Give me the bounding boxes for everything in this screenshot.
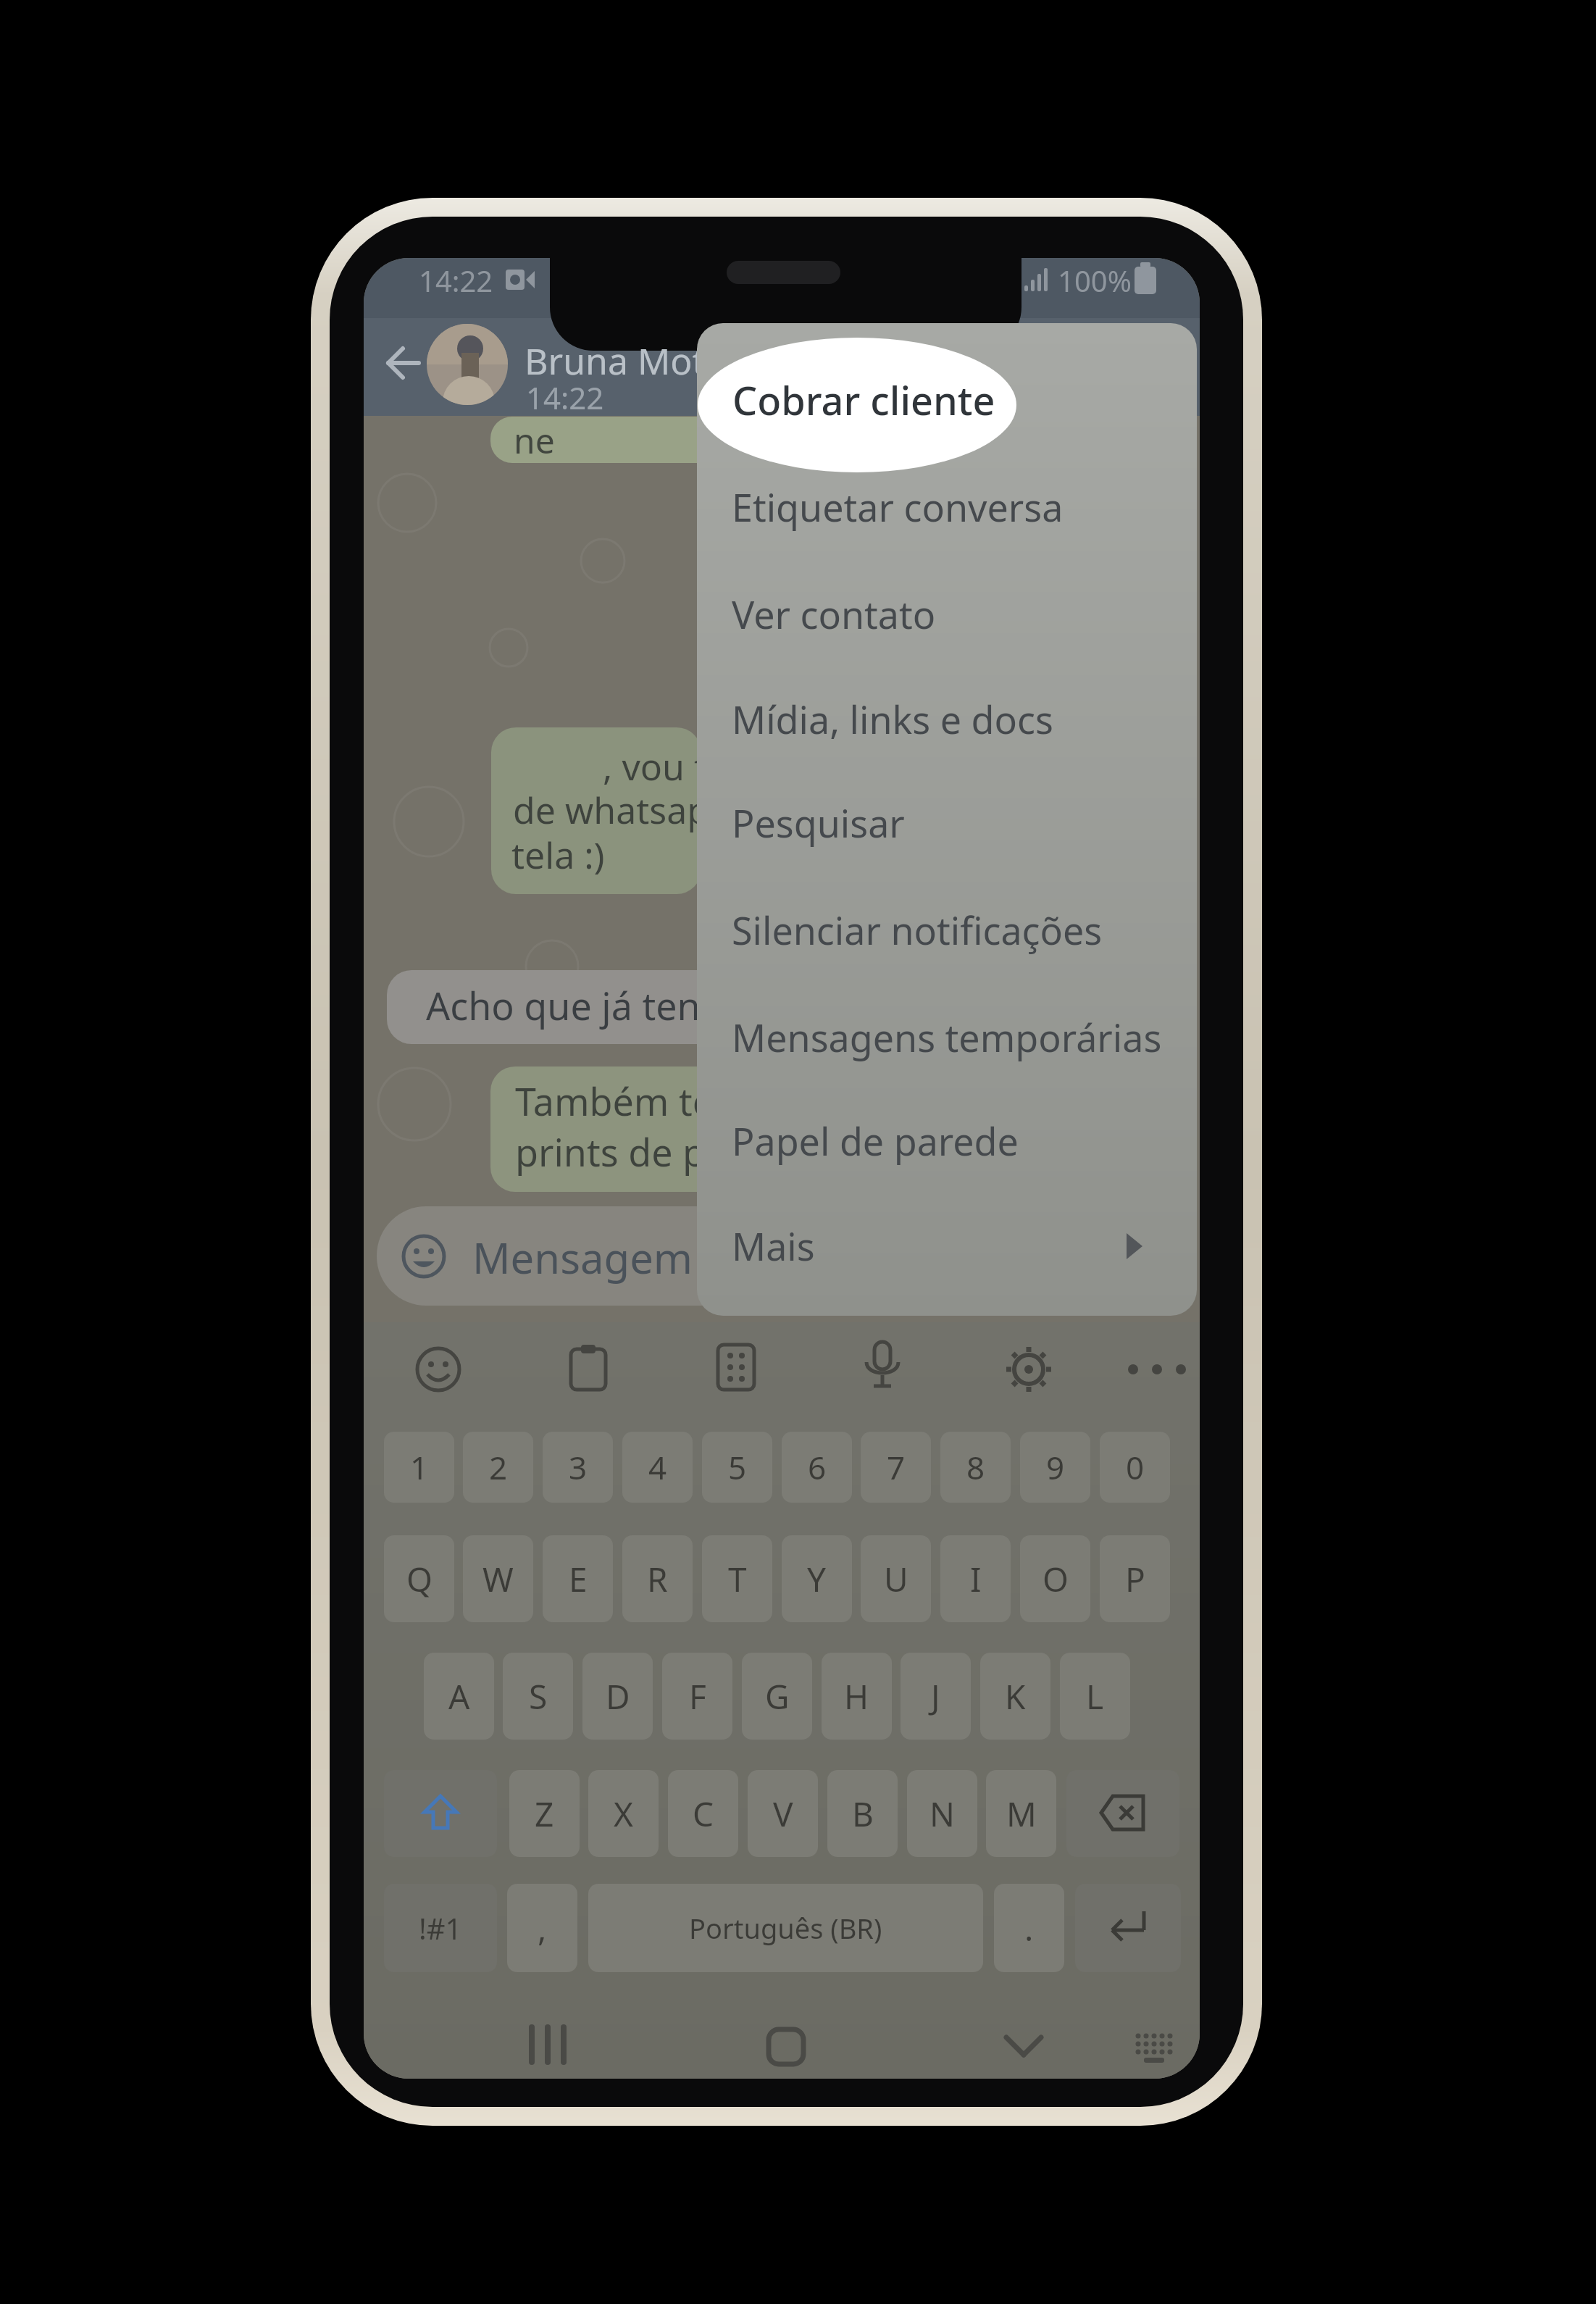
- staticText: 3: [569, 1445, 588, 1489]
- button[interactable]: O: [1020, 1535, 1090, 1622]
- button[interactable]: 7: [861, 1432, 931, 1503]
- staticText: R: [647, 1556, 668, 1602]
- button[interactable]: Papel de parede: [697, 1089, 1197, 1193]
- button[interactable]: 2: [463, 1432, 533, 1503]
- button[interactable]: K: [980, 1653, 1050, 1740]
- staticText: V: [773, 1791, 793, 1837]
- button[interactable]: N: [907, 1770, 977, 1857]
- button[interactable]: [1003, 2032, 1044, 2061]
- staticText: 9: [1046, 1445, 1065, 1489]
- button[interactable]: 9: [1020, 1432, 1090, 1503]
- button[interactable]: [527, 2023, 571, 2066]
- button[interactable]: 1: [384, 1432, 454, 1503]
- button[interactable]: 8: [940, 1432, 1011, 1503]
- staticText: Mais: [732, 1220, 815, 1272]
- button[interactable]: V: [748, 1770, 818, 1857]
- staticText: 6: [808, 1445, 827, 1489]
- button[interactable]: 4: [622, 1432, 693, 1503]
- button[interactable]: [1124, 1362, 1190, 1377]
- button[interactable]: Pesquisar: [697, 771, 1197, 875]
- button[interactable]: L: [1060, 1653, 1130, 1740]
- staticText: , vou t: [603, 742, 707, 791]
- staticText: U: [884, 1556, 908, 1602]
- button[interactable]: [1066, 1770, 1179, 1857]
- staticText: D: [606, 1674, 630, 1719]
- button[interactable]: Português (BR): [588, 1884, 983, 1972]
- button[interactable]: B: [827, 1770, 898, 1857]
- button[interactable]: [1134, 2029, 1174, 2066]
- button[interactable]: [1075, 1884, 1181, 1972]
- staticText: F: [689, 1674, 706, 1719]
- staticText: T: [728, 1556, 747, 1602]
- button[interactable]: G: [742, 1653, 812, 1740]
- button[interactable]: [415, 1346, 461, 1393]
- staticText: .: [1024, 1906, 1034, 1951]
- button[interactable]: A: [424, 1653, 494, 1740]
- button[interactable]: W: [463, 1535, 533, 1622]
- staticText: Mensagens temporárias: [732, 1011, 1162, 1063]
- button[interactable]: J: [901, 1653, 971, 1740]
- button[interactable]: X: [588, 1770, 659, 1857]
- staticText: K: [1005, 1674, 1026, 1719]
- button[interactable]: Etiquetar conversa: [697, 455, 1197, 559]
- staticText: Etiquetar conversa: [732, 481, 1064, 533]
- button[interactable]: S: [503, 1653, 573, 1740]
- button[interactable]: E: [543, 1535, 613, 1622]
- button[interactable]: 6: [782, 1432, 852, 1503]
- button[interactable]: P: [1100, 1535, 1170, 1622]
- button[interactable]: Silenciar notificações: [697, 878, 1197, 982]
- staticText: ne: [514, 417, 555, 464]
- button[interactable]: 0: [1100, 1432, 1170, 1503]
- button[interactable]: !#1: [384, 1884, 497, 1972]
- staticText: Mídia, links e docs: [732, 693, 1053, 745]
- button[interactable]: C: [668, 1770, 738, 1857]
- button[interactable]: ,: [507, 1884, 577, 1972]
- button[interactable]: H: [822, 1653, 892, 1740]
- button[interactable]: [364, 1322, 1200, 2079]
- staticText: M: [1006, 1791, 1037, 1837]
- staticText: ,: [538, 1906, 547, 1951]
- staticText: 14:22: [526, 377, 604, 418]
- button[interactable]: Ver contato: [697, 562, 1197, 667]
- button[interactable]: .: [994, 1884, 1064, 1972]
- button[interactable]: [698, 338, 1016, 472]
- button[interactable]: U: [861, 1535, 931, 1622]
- button[interactable]: F: [662, 1653, 732, 1740]
- button[interactable]: T: [702, 1535, 772, 1622]
- button[interactable]: Mídia, links e docs: [697, 667, 1197, 772]
- button[interactable]: 3: [543, 1432, 613, 1503]
- button[interactable]: Q: [384, 1535, 454, 1622]
- staticText: 8: [966, 1445, 985, 1489]
- staticText: 5: [728, 1445, 747, 1489]
- staticText: S: [529, 1674, 548, 1719]
- button[interactable]: [571, 1345, 606, 1390]
- button[interactable]: [1006, 1346, 1052, 1393]
- button[interactable]: [862, 1342, 903, 1390]
- button[interactable]: [766, 2027, 806, 2066]
- staticText: 1: [410, 1445, 429, 1489]
- button[interactable]: 5: [702, 1432, 772, 1503]
- button[interactable]: I: [940, 1535, 1011, 1622]
- button[interactable]: Mais: [697, 1194, 1197, 1298]
- button[interactable]: Y: [782, 1535, 852, 1622]
- button[interactable]: Z: [509, 1770, 580, 1857]
- staticText: G: [765, 1674, 790, 1719]
- button[interactable]: [377, 1206, 1190, 1306]
- staticText: prints de pa: [515, 1126, 727, 1177]
- staticText: de whatsap: [513, 785, 709, 835]
- staticText: H: [844, 1674, 869, 1719]
- staticText: Y: [807, 1556, 827, 1602]
- staticText: Z: [535, 1791, 554, 1837]
- staticText: Cobrar cliente: [732, 373, 995, 427]
- staticText: O: [1043, 1556, 1069, 1602]
- button[interactable]: R: [622, 1535, 693, 1622]
- staticText: Bruna Motá: [525, 336, 726, 385]
- staticText: I: [970, 1556, 982, 1602]
- staticText: W: [482, 1556, 514, 1602]
- button[interactable]: [384, 1770, 497, 1857]
- button[interactable]: D: [582, 1653, 653, 1740]
- staticText: Português (BR): [689, 1909, 882, 1947]
- button[interactable]: [718, 1345, 754, 1390]
- button[interactable]: M: [986, 1770, 1056, 1857]
- button[interactable]: Mensagens temporárias: [697, 985, 1197, 1090]
